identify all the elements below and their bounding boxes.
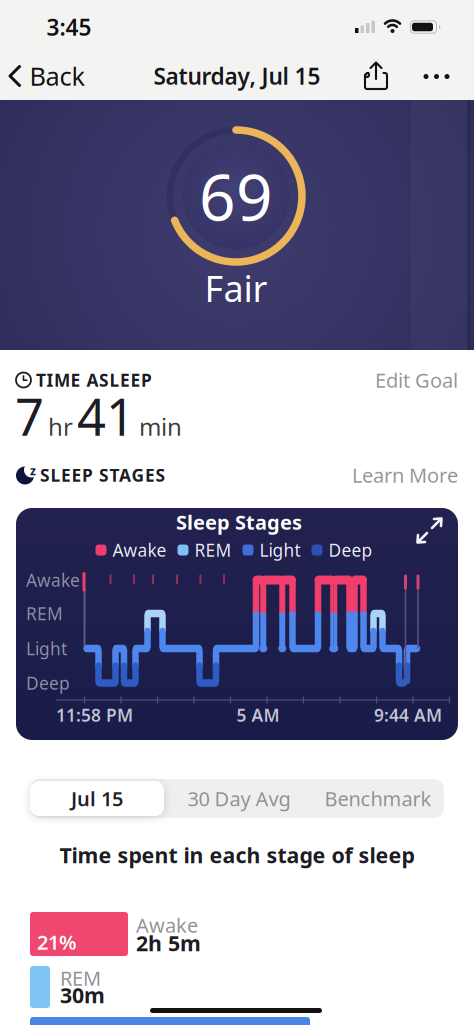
staticText: z <box>30 462 36 478</box>
staticText: 21% <box>37 929 77 955</box>
staticText: Light <box>259 538 300 561</box>
staticText: 30m <box>60 981 105 1009</box>
staticText: Saturday, Jul 15 <box>153 61 320 91</box>
staticText: TIME ASLEEP <box>36 368 152 391</box>
staticText: Learn More <box>352 462 458 488</box>
staticText: Awake <box>136 912 198 938</box>
staticText: SLEEP STAGES <box>40 463 165 486</box>
staticText: 7 <box>15 382 44 450</box>
staticText: Light <box>26 637 67 660</box>
staticText: Awake <box>26 568 80 591</box>
button[interactable]: Expand chart <box>417 518 443 544</box>
staticText: REM <box>26 602 63 625</box>
button[interactable]: Benchmark <box>309 781 447 816</box>
staticText: hr <box>48 410 73 442</box>
staticText: 3:45 <box>46 12 91 42</box>
staticText: 30 Day Avg <box>187 785 290 812</box>
button[interactable]: Jul 15 <box>30 781 164 816</box>
button[interactable]: Edit Goal <box>338 367 458 393</box>
staticText: 41 <box>77 382 135 450</box>
button[interactable]: More options <box>423 74 449 79</box>
staticText: Fair <box>204 264 267 312</box>
staticText: REM <box>194 538 231 561</box>
staticText: Edit Goal <box>375 367 458 393</box>
staticText: Benchmark <box>324 785 431 812</box>
staticText: 11:58 PM <box>56 703 133 726</box>
staticText: Sleep Stages <box>176 509 302 535</box>
staticText: 5 AM <box>236 703 279 726</box>
button[interactable]: Back <box>8 59 85 93</box>
staticText: 69 <box>199 153 273 238</box>
staticText: Jul 15 <box>71 785 123 812</box>
staticText: REM <box>60 965 101 991</box>
staticText: Awake <box>112 538 166 561</box>
button[interactable]: Share <box>361 60 391 94</box>
staticText: Back <box>29 59 85 93</box>
staticText: min <box>139 410 182 442</box>
staticText: Deep <box>328 538 372 561</box>
staticText: Deep <box>26 671 70 694</box>
button[interactable]: 30 Day Avg <box>170 781 308 816</box>
button[interactable]: Learn More <box>338 462 458 488</box>
staticText: Time spent in each stage of sleep <box>59 841 414 869</box>
staticText: 9:44 AM <box>374 703 442 726</box>
staticText: 2h 5m <box>136 929 201 957</box>
